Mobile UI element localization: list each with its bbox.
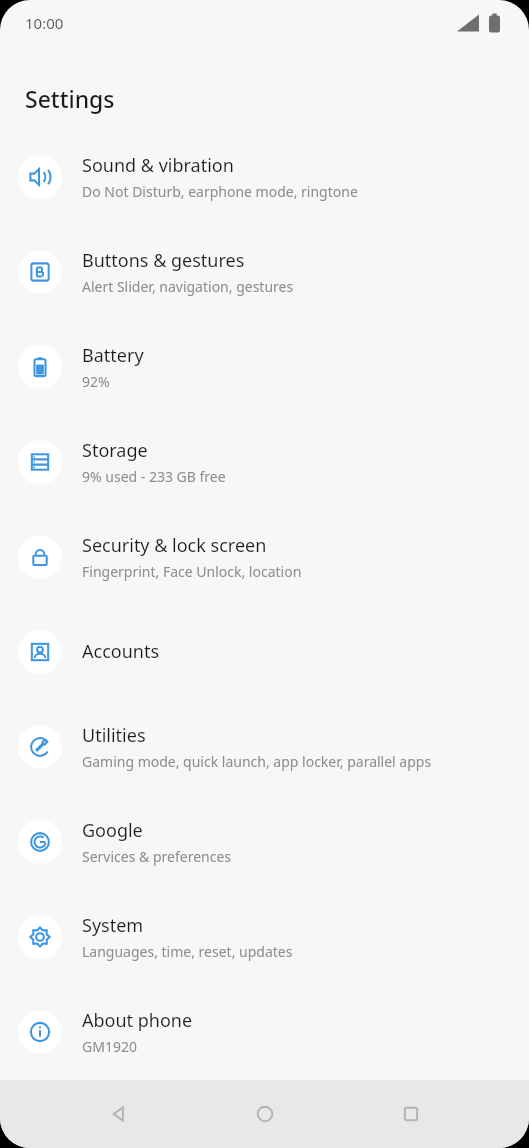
button[interactable]: About phone [0,998,529,1065]
button[interactable]: Google [0,808,529,875]
staticText: Settings [25,83,115,114]
staticText: System [82,913,144,938]
staticText: Alert Slider, navigation, gestures [82,277,294,296]
staticText: Battery [82,343,144,368]
button[interactable]: Battery [0,333,529,400]
button[interactable]: Back [90,1086,146,1142]
staticText: Accounts [82,639,160,664]
staticText: 10:00 [25,13,64,33]
staticText: Gaming mode, quick launch, app locker, p… [82,752,432,771]
staticText: 92% [82,372,110,391]
button[interactable]: Home [237,1086,293,1142]
staticText: GM1920 [82,1037,137,1056]
staticText: Security & lock screen [82,533,267,558]
staticText: 9% used - 233 GB free [82,467,226,486]
staticText: Utilities [82,723,146,748]
button[interactable]: Accounts [0,618,529,685]
staticText: Storage [82,438,148,463]
staticText: Languages, time, reset, updates [82,942,293,961]
staticText: Buttons & gestures [82,248,245,273]
button[interactable]: Buttons & gestures [0,238,529,305]
button[interactable]: Storage [0,428,529,495]
staticText: Google [82,818,143,843]
button[interactable]: Utilities [0,713,529,780]
button[interactable]: Sound & vibration [0,143,529,210]
staticText: About phone [82,1008,193,1033]
staticText: Do Not Disturb, earphone mode, ringtone [82,182,358,201]
staticText: Fingerprint, Face Unlock, location [82,562,302,581]
button[interactable]: System [0,903,529,970]
staticText: Services & preferences [82,847,232,866]
staticText: Sound & vibration [82,153,234,178]
button[interactable]: Security & lock screen [0,523,529,590]
button[interactable]: Recent apps [383,1086,439,1142]
